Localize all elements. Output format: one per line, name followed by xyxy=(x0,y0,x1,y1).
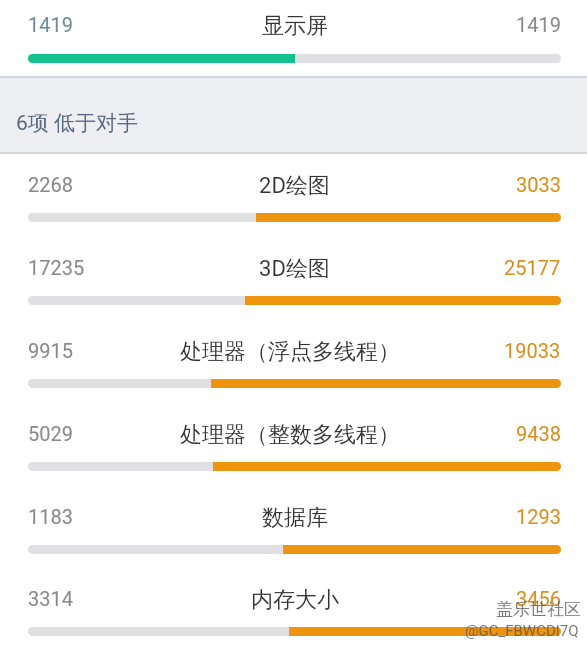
staticText: 盖乐世社区 xyxy=(496,599,581,620)
staticText: 9438 xyxy=(516,422,561,445)
staticText: 25177 xyxy=(504,256,561,279)
button[interactable]: 内存大小 3314 vs 3456 xyxy=(0,581,587,650)
staticText: 19033 xyxy=(504,339,561,362)
staticText: 3456 xyxy=(516,587,561,610)
staticText: 9915 xyxy=(28,339,73,362)
staticText: 1183 xyxy=(28,505,73,528)
staticText: 1293 xyxy=(516,505,561,528)
staticText: @GC_FBWCDI7Q xyxy=(465,622,579,640)
staticText: 显示屏 xyxy=(262,12,328,40)
staticText: 处理器（浮点多线程） xyxy=(180,338,400,366)
staticText: 3033 xyxy=(516,173,561,196)
staticText: 处理器（整数多线程） xyxy=(180,421,400,449)
staticText: 6项 低于对手 xyxy=(16,110,139,134)
button[interactable]: 处理器（整数多线程） 5029 vs 9438 xyxy=(0,416,587,499)
button[interactable]: 数据库 1183 vs 1293 xyxy=(0,499,587,582)
staticText: 内存大小 xyxy=(251,586,339,614)
button[interactable]: 2D绘图 2268 vs 3033 xyxy=(0,167,587,250)
button[interactable]: 6项 低于对手 xyxy=(0,76,587,154)
button[interactable]: 3D绘图 17235 vs 25177 xyxy=(0,250,587,333)
button[interactable]: 显示屏 1419 vs 1419 xyxy=(0,0,587,71)
staticText: 数据库 xyxy=(262,504,328,532)
staticText: 5029 xyxy=(28,422,73,445)
staticText: 1419 xyxy=(516,13,561,36)
staticText: 2268 xyxy=(28,173,73,196)
staticText: 2D绘图 xyxy=(259,172,330,200)
button[interactable]: 处理器（浮点多线程） 9915 vs 19033 xyxy=(0,333,587,416)
staticText: 3D绘图 xyxy=(259,255,330,283)
staticText: 17235 xyxy=(28,256,85,279)
staticText: 1419 xyxy=(28,13,73,36)
staticText: 3314 xyxy=(28,587,73,610)
